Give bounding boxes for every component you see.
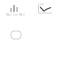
staticText: Mon Tue Wed: [6, 13, 25, 16]
staticText: 100: [38, 3, 44, 6]
